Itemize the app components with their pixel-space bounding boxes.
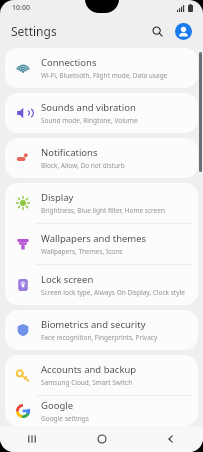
button[interactable]: Sounds and vibration bbox=[5, 93, 198, 133]
staticText: Biometrics and security bbox=[41, 318, 146, 331]
staticText: Connections bbox=[41, 56, 97, 69]
staticText: Wallpapers and themes bbox=[41, 232, 147, 245]
button[interactable]: Notifications bbox=[5, 138, 198, 178]
staticText: Display bbox=[41, 191, 74, 204]
staticText: Wi-Fi, Bluetooth, Flight mode, Data usag… bbox=[41, 71, 168, 80]
button[interactable]: Back bbox=[153, 426, 189, 452]
staticText: Screen lock type, Always On Display, Clo… bbox=[41, 288, 185, 297]
staticText: Sounds and vibration bbox=[41, 101, 136, 114]
button[interactable]: Connections bbox=[5, 48, 198, 88]
staticText: Brightness, Blue light filter, Home scre… bbox=[41, 206, 165, 215]
button[interactable]: Home bbox=[84, 426, 120, 452]
button[interactable]: Lock screen bbox=[5, 265, 198, 305]
button[interactable]: Search bbox=[145, 19, 169, 43]
button[interactable]: Account bbox=[171, 19, 195, 43]
button[interactable]: Google bbox=[5, 396, 198, 426]
button[interactable]: Biometrics and security bbox=[5, 310, 198, 350]
staticText: Block, Allow, Do not disturb bbox=[41, 161, 125, 170]
staticText: Google settings bbox=[41, 414, 89, 423]
staticText: Lock screen bbox=[41, 273, 94, 286]
button[interactable]: Wallpapers and themes bbox=[5, 224, 198, 264]
staticText: Samsung Cloud, Smart Switch bbox=[41, 378, 133, 387]
button[interactable]: Display bbox=[5, 183, 198, 223]
staticText: Face recognition, Fingerprints, Privacy bbox=[41, 333, 158, 342]
staticText: Settings bbox=[11, 23, 57, 39]
staticText: Accounts and backup bbox=[41, 363, 137, 376]
staticText: Notifications bbox=[41, 146, 98, 159]
staticText: 10:00 bbox=[12, 3, 30, 13]
staticText: Wallpapers, Themes, Icons bbox=[41, 247, 123, 256]
staticText: Sound mode, Ringtone, Volume bbox=[41, 116, 138, 125]
button[interactable]: Recent apps bbox=[14, 426, 50, 452]
button[interactable]: Accounts and backup bbox=[5, 355, 198, 395]
staticText: Google bbox=[41, 399, 74, 412]
